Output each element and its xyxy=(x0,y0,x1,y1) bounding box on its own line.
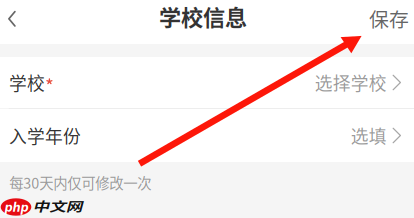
staticText: 入学年份 xyxy=(9,123,81,148)
button[interactable]: 学校 xyxy=(0,57,414,108)
staticText: 选择学校 xyxy=(315,70,387,95)
staticText: 每30天内仅可修改一次 xyxy=(9,172,151,193)
staticText: 保存 xyxy=(369,4,409,33)
button[interactable]: 保存 xyxy=(362,0,414,44)
staticText: php xyxy=(5,201,29,214)
button[interactable]: Back xyxy=(0,0,44,44)
staticText: 选填 xyxy=(351,123,387,148)
staticText: 中文网 xyxy=(33,194,81,218)
staticText: 学校 xyxy=(9,70,45,95)
button[interactable]: 入学年份 xyxy=(0,109,414,162)
staticText: 学校信息 xyxy=(159,0,247,32)
